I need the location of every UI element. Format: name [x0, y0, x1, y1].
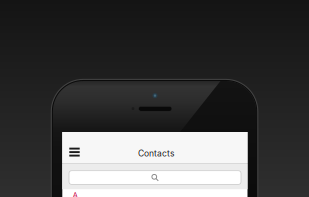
button[interactable]: Search — [69, 171, 241, 184]
staticText: Contacts — [138, 148, 175, 158]
button[interactable]: Menu — [64, 142, 85, 163]
staticText: A — [72, 190, 78, 197]
